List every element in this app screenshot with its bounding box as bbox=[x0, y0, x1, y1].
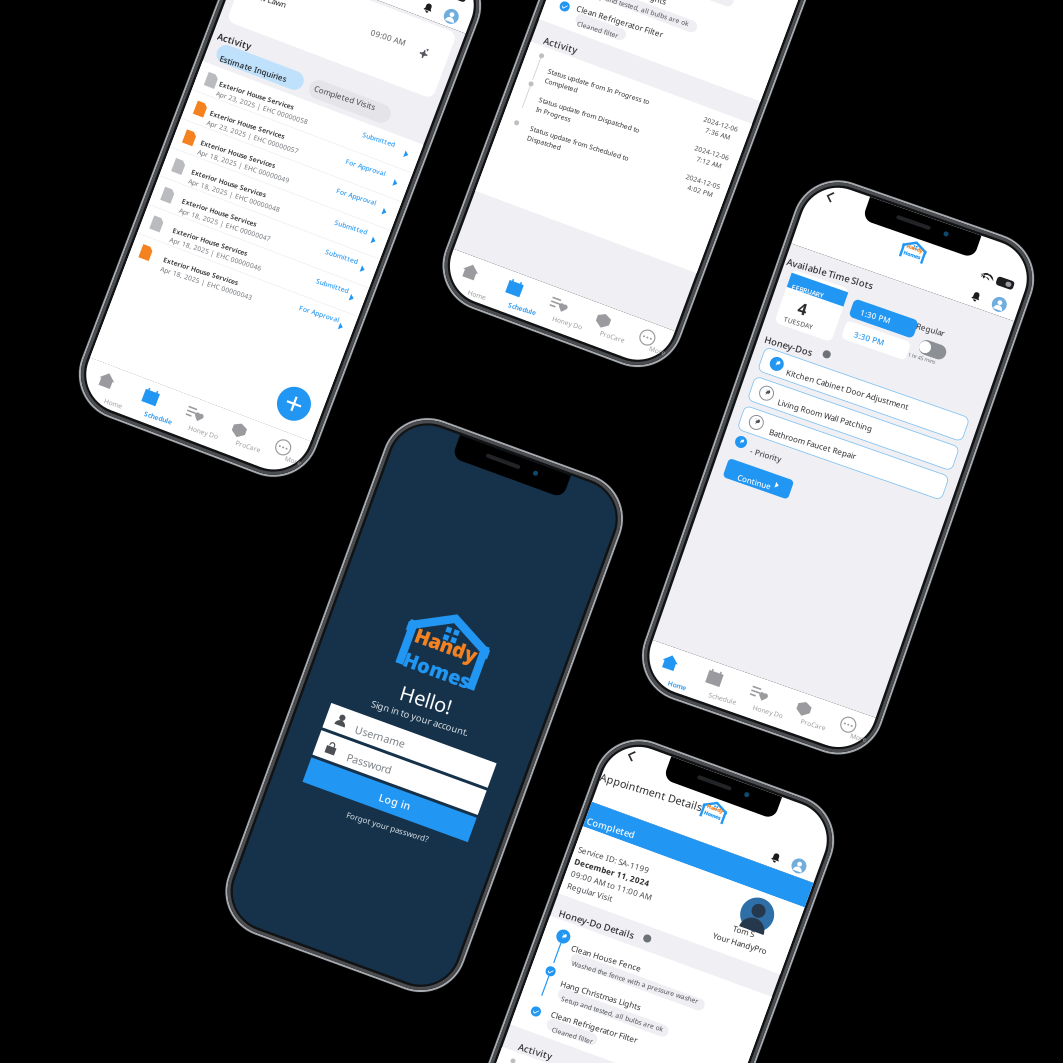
button[interactable]: ProCare bbox=[862, 691, 909, 733]
button[interactable]: 3:30 PM bbox=[798, 325, 866, 344]
staticText: 2024-12-06 bbox=[712, 125, 748, 133]
button[interactable]: Exterior House Services bbox=[162, 281, 398, 311]
button[interactable]: Exterior House Services bbox=[162, 158, 398, 188]
button[interactable]: ProCare bbox=[666, 304, 713, 346]
button[interactable]: Home bbox=[720, 691, 767, 733]
button[interactable]: Kitchen Cabinet Door Adjustment bbox=[730, 377, 946, 402]
button[interactable]: Kitchen Cabinet Door Adjustment bbox=[730, 377, 946, 402]
button[interactable]: Exterior House Services bbox=[162, 128, 398, 158]
button[interactable]: Log in bbox=[336, 793, 512, 819]
staticText: Home bbox=[734, 717, 753, 726]
button[interactable]: Continue bbox=[732, 494, 801, 514]
button[interactable]: Exterior House Services bbox=[162, 189, 398, 219]
button[interactable]: Home bbox=[162, 414, 209, 456]
button[interactable]: More bbox=[713, 304, 760, 346]
button[interactable]: Forgot your password? bbox=[382, 819, 467, 838]
button[interactable]: Exterior House Services bbox=[162, 250, 398, 280]
button[interactable]: Completed Visits bbox=[271, 73, 357, 92]
button[interactable]: Exterior House Services bbox=[162, 250, 398, 280]
button[interactable]: Password bbox=[336, 764, 512, 790]
button[interactable]: Exterior House Services bbox=[162, 128, 398, 158]
staticText: Clean Refrigerator Filter bbox=[551, 1034, 641, 1044]
button[interactable]: ProCare bbox=[304, 414, 351, 456]
button[interactable]: 1:30 PM bbox=[798, 302, 866, 321]
staticText: Bathroom Faucet Repair bbox=[762, 447, 852, 457]
staticText: Honey Do bbox=[627, 330, 658, 339]
button[interactable]: Back bbox=[529, 762, 547, 784]
button[interactable]: Honey Do bbox=[814, 691, 862, 733]
button[interactable]: Honey Do bbox=[619, 304, 666, 346]
button[interactable]: Forgot your password? bbox=[382, 819, 467, 838]
button[interactable]: Account bbox=[726, 812, 741, 827]
button[interactable]: Log in bbox=[336, 793, 512, 819]
staticText: Homes bbox=[389, 654, 459, 681]
button[interactable]: Schedule bbox=[767, 691, 814, 733]
button[interactable]: Schedule bbox=[572, 304, 619, 346]
button[interactable]: Schedule bbox=[209, 414, 256, 456]
button[interactable]: 3:30 PM bbox=[798, 325, 866, 344]
button[interactable]: More bbox=[351, 414, 398, 456]
button[interactable]: Honey Do bbox=[256, 414, 304, 456]
button[interactable]: Home bbox=[524, 304, 572, 346]
staticText: Submitted bbox=[342, 261, 376, 270]
button[interactable]: Add bbox=[340, 356, 398, 414]
button[interactable]: Exterior House Services bbox=[162, 189, 398, 219]
button[interactable]: Honey Do bbox=[619, 304, 666, 346]
button[interactable]: Estimate Inquiries bbox=[172, 73, 264, 92]
button[interactable]: Notifications bbox=[701, 811, 717, 827]
staticText: Apr 18, 2025 | EHC 00000047 bbox=[190, 235, 286, 244]
button[interactable]: Notifications bbox=[904, 252, 920, 268]
button[interactable]: Exterior House Services bbox=[162, 220, 398, 250]
button[interactable]: Bathroom Faucet Repair bbox=[730, 439, 946, 464]
button[interactable]: Honey Do bbox=[814, 691, 862, 733]
staticText: Mow Lawn bbox=[191, 7, 230, 17]
button[interactable]: ProCare bbox=[304, 414, 351, 456]
staticText: Cleaned filter bbox=[556, 1049, 599, 1058]
button[interactable]: Username bbox=[336, 735, 512, 761]
staticText: Honey-Do Details bbox=[529, 934, 608, 946]
button[interactable]: Exterior House Services bbox=[162, 97, 398, 127]
button[interactable]: Home bbox=[524, 304, 572, 346]
button[interactable]: Exterior House Services bbox=[162, 97, 398, 127]
button[interactable]: Exterior House Services bbox=[162, 158, 398, 188]
button[interactable]: Honey Do bbox=[256, 414, 304, 456]
staticText: Setup and tested, all bulbs are ok bbox=[556, 1017, 663, 1025]
button[interactable]: Bathroom Faucet Repair bbox=[730, 439, 946, 464]
button[interactable]: Schedule bbox=[209, 414, 256, 456]
button[interactable]: Exterior House Services bbox=[162, 281, 398, 311]
button[interactable]: Password bbox=[336, 764, 512, 790]
button[interactable]: ProCare bbox=[666, 304, 713, 346]
button[interactable]: Home bbox=[720, 691, 767, 733]
button[interactable]: Schedule bbox=[572, 304, 619, 346]
button[interactable]: Exterior House Services bbox=[162, 220, 398, 250]
button[interactable]: 1:30 PM bbox=[798, 302, 866, 321]
button[interactable]: Account bbox=[726, 812, 741, 827]
button[interactable]: Estimate Inquiries bbox=[172, 73, 264, 92]
button[interactable]: Living Room Wall Patching bbox=[730, 408, 946, 433]
staticText: Forgot your password? bbox=[382, 827, 467, 838]
button[interactable]: Username bbox=[336, 735, 512, 761]
button[interactable]: Home bbox=[162, 414, 209, 456]
staticText: Status update from In Progress to bbox=[549, 95, 655, 103]
button[interactable]: More bbox=[713, 304, 760, 346]
button[interactable]: Back bbox=[529, 762, 547, 784]
button[interactable]: Notifications bbox=[904, 252, 920, 268]
button[interactable]: Continue bbox=[732, 494, 801, 514]
staticText: Available Time Slots bbox=[732, 277, 822, 290]
button[interactable]: Living Room Wall Patching bbox=[730, 408, 946, 433]
button[interactable]: Notifications bbox=[701, 811, 717, 827]
staticText: Hang Christmas Lights bbox=[551, 1001, 635, 1012]
button[interactable]: Add bbox=[340, 356, 398, 414]
button[interactable]: More bbox=[351, 414, 398, 456]
button[interactable]: ProCare bbox=[862, 691, 909, 733]
button[interactable]: Completed Visits bbox=[271, 73, 357, 92]
button[interactable]: Schedule bbox=[767, 691, 814, 733]
staticText: Cleaned filter bbox=[556, 1049, 599, 1058]
